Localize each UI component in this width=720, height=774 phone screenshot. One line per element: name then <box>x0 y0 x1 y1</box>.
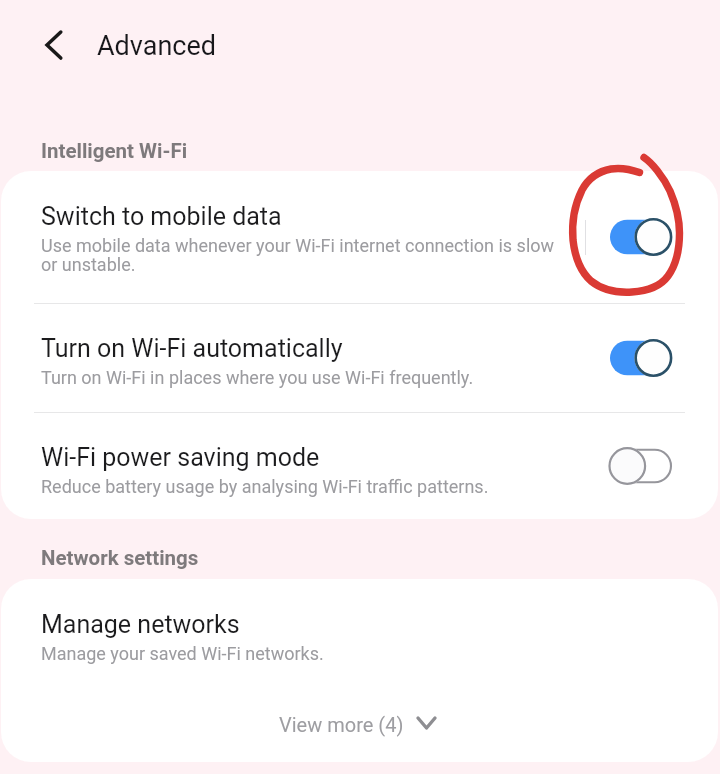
staticText: Network settings <box>41 546 199 570</box>
button[interactable]: Switch off <box>608 440 684 492</box>
button[interactable]: Manage networks <box>1 579 718 680</box>
button[interactable]: Wi-Fi power saving mode <box>1 412 718 519</box>
button[interactable]: Switch on <box>608 211 684 263</box>
button[interactable]: Switch on <box>608 332 684 384</box>
staticText: Intelligent Wi-Fi <box>41 139 188 163</box>
button[interactable]: Turn on Wi-Fi automatically <box>1 303 718 412</box>
staticText: Use mobile data whenever your Wi-Fi inte… <box>41 235 572 276</box>
staticText: Manage networks <box>41 610 240 639</box>
staticText: Advanced <box>97 30 216 62</box>
staticText: Switch to mobile data <box>41 202 282 231</box>
staticText: Turn on Wi-Fi automatically <box>41 334 343 363</box>
button[interactable]: Navigate back <box>25 16 83 74</box>
staticText: Wi-Fi power saving mode <box>41 443 320 472</box>
staticText: Manage your saved Wi-Fi networks. <box>41 643 324 664</box>
staticText: Reduce battery usage by analysing Wi-Fi … <box>41 476 489 497</box>
button[interactable]: Switch to mobile data <box>1 171 718 303</box>
button[interactable]: View more (4) <box>1 680 718 762</box>
staticText: Turn on Wi-Fi in places where you use Wi… <box>41 367 474 388</box>
staticText: View more (4) <box>279 713 404 736</box>
